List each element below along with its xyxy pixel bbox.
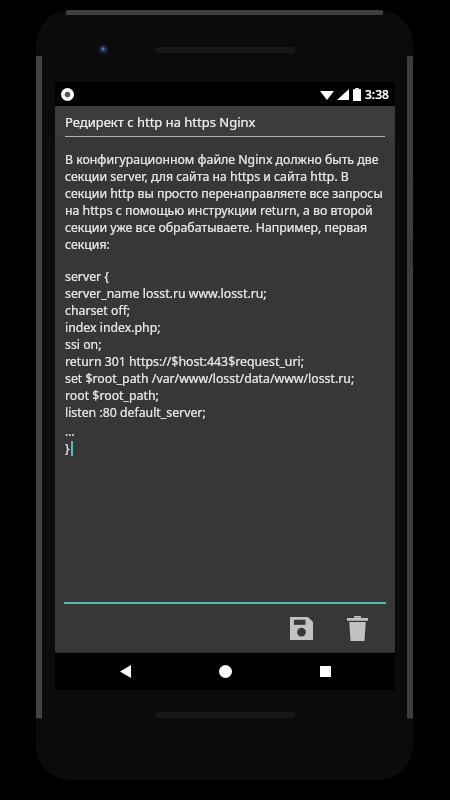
button[interactable]: Home: [195, 652, 255, 690]
button[interactable]: Recent apps: [295, 652, 355, 690]
staticText: listen :80 default_server;: [65, 404, 206, 421]
staticText: server_name losst.ru www.losst.ru;: [65, 285, 267, 302]
staticText: root $root_path;: [65, 387, 159, 404]
staticText: index index.php;: [65, 319, 161, 336]
button[interactable]: Delete: [335, 606, 379, 650]
button[interactable]: Back: [95, 652, 155, 690]
staticText: Редирект с http на https Nginx: [65, 113, 256, 131]
staticText: return 301 https://$host:443$request_uri…: [65, 353, 304, 370]
button[interactable]: Редирект с http на https Nginx: [55, 106, 395, 137]
staticText: set $root_path /var/www/losst/data/www/l…: [65, 370, 355, 387]
button[interactable]: Save: [279, 606, 323, 650]
staticText: 3:38: [365, 86, 389, 102]
staticText: В конфигурационном файле Nginx должно бы…: [65, 151, 385, 253]
staticText: …: [65, 423, 75, 440]
staticText: charset off;: [65, 302, 131, 319]
staticText: ssi on;: [65, 336, 102, 353]
staticText: server {: [65, 268, 110, 285]
staticText: }: [65, 440, 70, 457]
button[interactable]: В конфигурационном файле Nginx должно бы…: [55, 137, 395, 602]
